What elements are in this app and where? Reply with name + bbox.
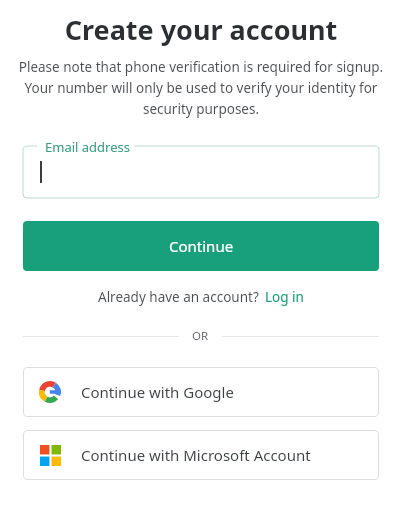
button[interactable]: Microsoft — [23, 430, 379, 480]
staticText: Continue with Microsoft Account — [81, 445, 311, 465]
staticText: Continue — [169, 236, 234, 256]
other: Google — [39, 381, 61, 403]
other: Microsoft — [40, 445, 61, 466]
staticText: Continue with Google — [81, 382, 234, 402]
staticText: Email address — [45, 138, 130, 156]
button[interactable]: Continue — [23, 221, 379, 271]
staticText: Log in — [265, 288, 304, 306]
staticText: Please note that phone verification is r… — [14, 58, 388, 118]
staticText: Already have an account? — [98, 288, 259, 306]
staticText: Create your account — [0, 11, 402, 48]
button[interactable]: Google — [23, 367, 379, 417]
button[interactable]: Log in — [265, 288, 304, 306]
staticText: OR — [192, 328, 209, 344]
